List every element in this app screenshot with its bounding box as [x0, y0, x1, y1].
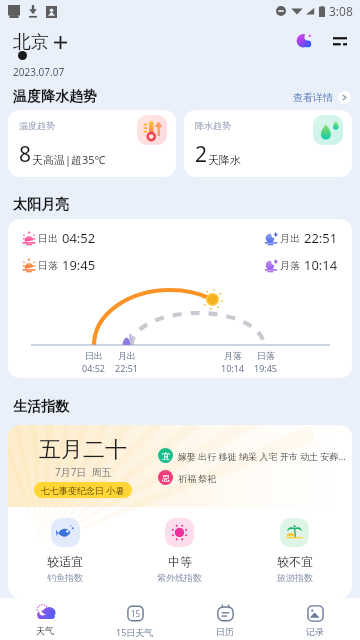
staticText: 日出 [38, 232, 58, 245]
button[interactable]: 15 [90, 598, 180, 640]
staticText: 10:14 [221, 362, 245, 374]
staticText: 月落 [280, 259, 300, 272]
button[interactable]: 日出 [8, 219, 352, 378]
staticText: 五月二十 [39, 436, 127, 464]
staticText: 19:45 [254, 362, 278, 374]
staticText: 紫外线指数 [157, 572, 202, 583]
staticText: 19:45 [62, 256, 96, 274]
staticText: 月出 [280, 232, 300, 245]
staticText: 15 [131, 608, 141, 619]
staticText: 北京 [13, 31, 49, 54]
staticText: 22:51 [304, 229, 338, 247]
staticText: 日出 [85, 350, 103, 361]
staticText: 温度趋势 [19, 120, 55, 131]
staticText: 日落 [38, 259, 58, 272]
staticText: 15日天气 [116, 626, 154, 638]
button[interactable]: 较不宜 [237, 518, 352, 583]
other: Menu [333, 35, 347, 47]
staticText: 7月7日 周五 [55, 465, 112, 479]
staticText: 月落 [224, 350, 242, 361]
staticText: 8 [19, 140, 32, 169]
other: Add city [54, 36, 67, 49]
staticText: 旅游指数 [277, 572, 313, 583]
other: Weather [296, 33, 312, 49]
staticText: 太阳月亮 [13, 196, 69, 214]
staticText: 温度降水趋势 [13, 88, 97, 106]
button[interactable]: 温度趋势 [8, 110, 176, 177]
staticText: 天高温|超35℃ [32, 152, 106, 167]
staticText: 生活指数 [13, 398, 69, 416]
staticText: 降水趋势 [195, 120, 231, 131]
button[interactable]: 五月二十 [8, 425, 352, 507]
staticText: 较不宜 [277, 554, 313, 569]
staticText: 钓鱼指数 [47, 572, 83, 583]
button[interactable]: 查看详情 [293, 91, 351, 104]
staticText: 记录 [306, 626, 324, 637]
staticText: 10:14 [304, 256, 338, 274]
button[interactable]: 较适宜 [8, 518, 122, 583]
staticText: 月出 [118, 350, 136, 361]
staticText: 04:52 [82, 362, 106, 374]
other: Weather [35, 604, 56, 622]
staticText: 嫁娶 出行 移徙 纳采 入宅 开市 动土 安葬… [178, 450, 346, 462]
staticText: 祈福 祭祀 [178, 472, 217, 484]
staticText: 3:08 [329, 3, 353, 19]
staticText: 天降水 [208, 153, 241, 167]
staticText: 22:51 [115, 362, 139, 374]
staticText: 天气 [36, 625, 54, 636]
staticText: 七七事变纪念日 小暑 [41, 484, 125, 496]
staticText: 中等 [168, 554, 192, 569]
staticText: 2023.07.07 [13, 65, 65, 78]
button[interactable]: Weather [0, 598, 90, 640]
staticText: 忌 [162, 473, 170, 483]
staticText: 2 [195, 140, 208, 169]
staticText: 日落 [257, 350, 275, 361]
button[interactable]: 中等 [122, 518, 237, 583]
staticText: 较适宜 [47, 554, 83, 569]
staticText: 04:52 [62, 229, 96, 247]
staticText: 日历 [216, 626, 234, 637]
button[interactable]: 记录 [270, 598, 360, 640]
button[interactable]: 日历 [180, 598, 270, 640]
staticText: 宜 [162, 451, 170, 461]
staticText: 查看详情 [293, 91, 333, 104]
button[interactable]: 降水趋势 [184, 110, 352, 177]
